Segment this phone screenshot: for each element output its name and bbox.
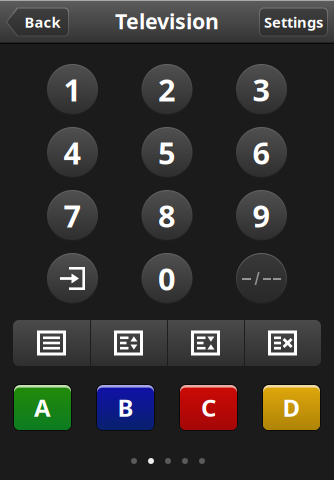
staticText: D — [282, 392, 300, 423]
button[interactable]: Page up and down — [90, 320, 167, 366]
button[interactable]: Collapse list — [167, 320, 244, 366]
button[interactable]: 6 — [236, 127, 287, 178]
button[interactable]: D — [262, 384, 321, 431]
button[interactable]: C — [179, 384, 238, 431]
button[interactable]: 3 — [236, 64, 287, 115]
button[interactable]: 2 — [141, 64, 192, 115]
staticText: C — [201, 392, 216, 423]
button[interactable]: Settings — [259, 7, 328, 36]
staticText: 0 — [158, 258, 176, 299]
staticText: 6 — [252, 132, 270, 173]
staticText: 1 — [63, 69, 81, 110]
button[interactable]: Clear list — [244, 320, 321, 366]
button[interactable]: 4 — [47, 127, 98, 178]
button[interactable]: 0 — [141, 253, 192, 304]
button[interactable]: 9 — [236, 190, 287, 241]
staticText: Back — [24, 12, 60, 32]
button[interactable]: 1 — [47, 64, 98, 115]
staticText: 2 — [158, 69, 176, 110]
button[interactable]: Back — [6, 7, 69, 36]
staticText: 5 — [158, 132, 176, 173]
button[interactable]: Menu — [13, 320, 90, 366]
button[interactable]: B — [96, 384, 155, 431]
staticText: 7 — [63, 195, 81, 236]
staticText: Settings — [264, 12, 323, 32]
button[interactable]: Input source — [47, 253, 98, 304]
button[interactable]: 5 — [141, 127, 192, 178]
staticText: A — [34, 392, 51, 423]
staticText: 8 — [158, 195, 176, 236]
staticText: B — [117, 392, 133, 423]
button[interactable]: 7 — [47, 190, 98, 241]
button[interactable]: 8 — [141, 190, 192, 241]
staticText: 3 — [252, 69, 270, 110]
staticText: 9 — [252, 195, 270, 236]
button[interactable]: A — [13, 384, 72, 431]
staticText: Television — [115, 7, 219, 35]
staticText: 4 — [63, 132, 81, 173]
button[interactable]: Dash key — [236, 253, 287, 304]
